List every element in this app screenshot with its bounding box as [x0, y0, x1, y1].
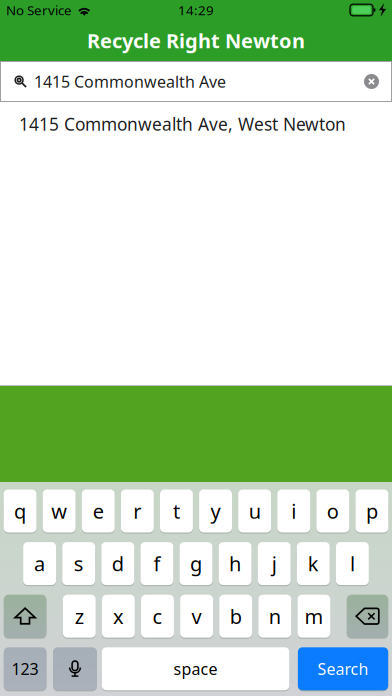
button[interactable]: Shift	[4, 595, 46, 638]
staticText: Search	[318, 658, 369, 679]
button[interactable]: Delete	[347, 595, 388, 638]
button[interactable]: o	[316, 489, 349, 532]
button[interactable]: t	[160, 489, 193, 532]
button[interactable]: h	[219, 542, 252, 585]
button[interactable]: c	[141, 595, 174, 638]
staticText: q	[14, 498, 26, 524]
staticText: t	[173, 498, 180, 524]
staticText: space	[174, 658, 218, 679]
button[interactable]: f	[140, 542, 173, 585]
staticText: o	[327, 498, 339, 524]
staticText: v	[192, 603, 202, 629]
button[interactable]: Search	[298, 647, 388, 690]
button[interactable]: l	[336, 542, 369, 585]
staticText: 14:29	[178, 1, 214, 19]
staticText: e	[93, 498, 104, 524]
button[interactable]: g	[180, 542, 212, 585]
staticText: r	[133, 498, 141, 524]
button[interactable]: d	[101, 542, 134, 585]
staticText: d	[112, 550, 124, 577]
staticText: u	[249, 498, 261, 524]
staticText: 1415 Commonwealth Ave	[34, 71, 226, 92]
staticText: p	[366, 498, 378, 524]
button[interactable]: v	[180, 595, 213, 638]
staticText: a	[34, 550, 45, 577]
staticText: g	[190, 550, 202, 577]
staticText: 123	[12, 658, 39, 679]
button[interactable]: i	[277, 489, 310, 532]
staticText: 1415 Commonwealth Ave, West Newton	[19, 112, 346, 135]
button[interactable]: z	[63, 595, 96, 638]
staticText: x	[113, 603, 124, 629]
button[interactable]: q	[4, 489, 36, 532]
staticText: c	[152, 603, 162, 629]
staticText: j	[272, 550, 277, 577]
button[interactable]: 1415 Commonwealth Ave	[0, 61, 392, 102]
button[interactable]: r	[121, 489, 154, 532]
staticText: w	[51, 498, 67, 524]
button[interactable]: w	[43, 489, 76, 532]
button[interactable]: k	[297, 542, 330, 585]
button[interactable]: Numbers	[4, 647, 46, 690]
staticText: h	[229, 550, 241, 577]
staticText: s	[74, 550, 84, 577]
staticText: z	[75, 603, 84, 629]
button[interactable]: space	[102, 647, 289, 690]
button[interactable]: y	[199, 489, 232, 532]
button[interactable]: a	[23, 542, 56, 585]
staticText: f	[153, 550, 160, 577]
button[interactable]: Dictate	[53, 647, 97, 690]
staticText: y	[211, 498, 221, 524]
staticText: b	[230, 603, 242, 629]
button[interactable]: u	[238, 489, 271, 532]
button[interactable]: x	[102, 595, 135, 638]
staticText: n	[269, 603, 281, 629]
button[interactable]: j	[258, 542, 291, 585]
staticText: m	[304, 603, 323, 629]
button[interactable]: e	[82, 489, 115, 532]
button[interactable]: n	[258, 595, 291, 638]
staticText: k	[308, 550, 319, 577]
button[interactable]: 1415 Commonwealth Ave, West Newton	[0, 102, 392, 146]
staticText: No Service	[6, 1, 72, 19]
button[interactable]: m	[297, 595, 330, 638]
staticText: i	[291, 498, 296, 524]
button[interactable]: b	[219, 595, 252, 638]
staticText: l	[350, 550, 355, 577]
button[interactable]: s	[62, 542, 95, 585]
button[interactable]: p	[355, 489, 388, 532]
staticText: Recycle Right Newton	[87, 27, 305, 54]
